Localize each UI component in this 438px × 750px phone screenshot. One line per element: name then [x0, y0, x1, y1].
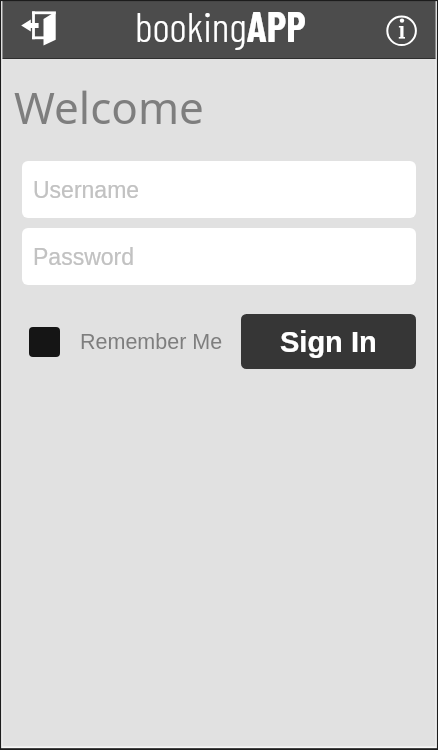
button[interactable]: Username — [22, 161, 416, 218]
staticText: Remember Me — [80, 330, 223, 354]
staticText: Password — [33, 244, 134, 270]
button[interactable]: Sign In — [241, 314, 416, 369]
staticText: Welcome — [14, 77, 204, 137]
button[interactable]: Remember Me — [22, 327, 223, 357]
button[interactable]: Info — [386, 0, 438, 59]
staticText: Username — [33, 177, 140, 203]
button[interactable]: Log out — [6, 0, 56, 59]
staticText: Sign In — [280, 326, 377, 358]
button[interactable]: Password — [22, 228, 416, 285]
staticText: bookingAPP — [135, 0, 306, 50]
